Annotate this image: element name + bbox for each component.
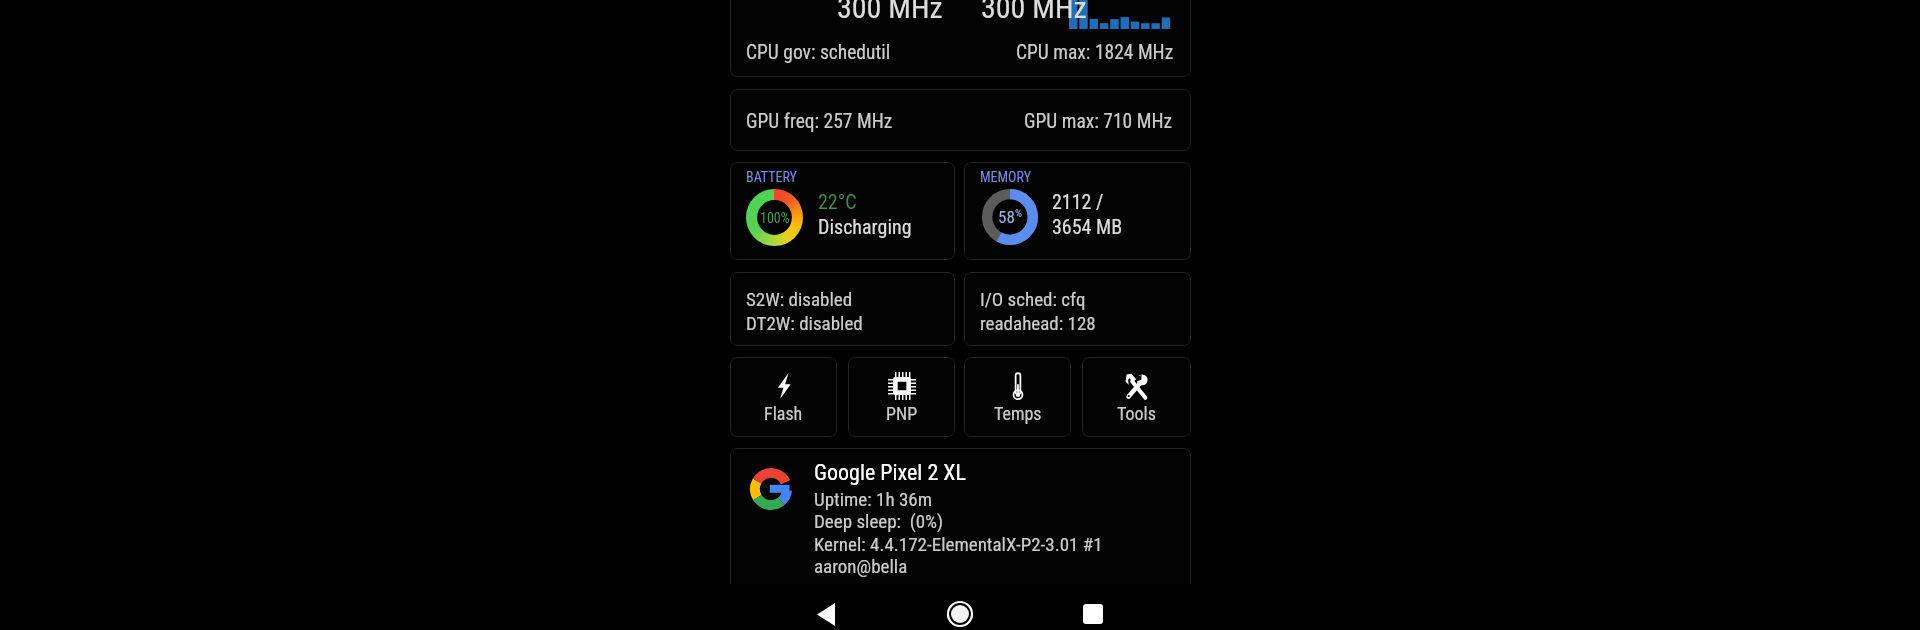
staticText: BATTERY [746, 169, 797, 185]
button[interactable]: S2W: disabled [730, 272, 955, 346]
staticText: Kernel: 4.4.172-ElementalX-P2-3.01 #1 [814, 533, 1103, 555]
staticText: 22°C [818, 190, 857, 213]
button[interactable]: Recents [1073, 594, 1113, 630]
staticText: aaron@bella [814, 555, 908, 577]
button[interactable]: I/O sched: cfq [964, 272, 1191, 346]
staticText: MEMORY [980, 169, 1031, 185]
staticText: 300 MHz [837, 0, 943, 25]
staticText: DT2W: disabled [746, 312, 863, 334]
button[interactable]: Flash [730, 357, 837, 437]
staticText: 300 MHz [981, 0, 1087, 25]
staticText: GPU max: 710 MHz [1024, 110, 1173, 133]
staticText: PNP [886, 403, 918, 424]
staticText: CPU max: 1824 MHz [1016, 41, 1174, 64]
staticText: I/O sched: cfq [980, 288, 1086, 310]
staticText: S2W: disabled [746, 288, 853, 310]
button[interactable]: BATTERY [730, 162, 955, 260]
staticText: Flash [764, 403, 803, 424]
staticText: readahead: 128 [980, 312, 1096, 334]
staticText: GPU freq: 257 MHz [746, 110, 893, 133]
staticText: CPU gov: schedutil [746, 41, 891, 64]
button[interactable]: Tools [1082, 357, 1191, 437]
staticText: 100% [760, 210, 790, 226]
staticText: Tools [1117, 403, 1156, 424]
button[interactable]: GPU freq: 257 MHz [730, 89, 1191, 151]
staticText: Discharging [818, 215, 912, 238]
staticText: Google Pixel 2 XL [814, 460, 966, 486]
staticText: 58 [998, 207, 1015, 227]
staticText: Uptime: 1h 36m [814, 488, 933, 510]
button[interactable]: Temps [964, 357, 1071, 437]
staticText: Temps [994, 403, 1042, 424]
staticText: 3654 MB [1052, 215, 1123, 238]
button[interactable]: MEMORY [964, 162, 1191, 260]
button[interactable]: PNP [848, 357, 955, 437]
button[interactable]: 300 MHz [730, 0, 1191, 77]
staticText: Deep sleep: (0%) [814, 510, 944, 532]
staticText: 2112 / [1052, 190, 1104, 213]
staticText: % [1015, 207, 1022, 220]
button[interactable]: Google Pixel 2 XL [730, 448, 1191, 608]
button[interactable]: Home [940, 594, 980, 630]
button[interactable]: Back [806, 594, 846, 630]
